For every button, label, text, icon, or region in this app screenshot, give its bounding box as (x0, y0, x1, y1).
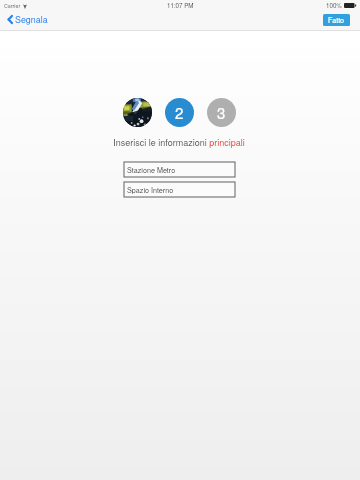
staticText: Carrier (4, 2, 21, 10)
button[interactable]: Stazione Metro (124, 162, 235, 177)
button[interactable]: Fatto (323, 14, 350, 26)
staticText: 3 (217, 102, 226, 123)
button[interactable]: Spazio Interno (124, 182, 235, 197)
button[interactable]: Indietro Segnala (0, 11, 54, 28)
staticText: 11:07 PM (167, 1, 194, 10)
staticText: Fatto (328, 15, 345, 25)
staticText: Inserisci le informazioni principali (113, 136, 245, 149)
button[interactable]: 2 (165, 98, 194, 127)
button[interactable]: Foto (123, 98, 152, 127)
staticText: Stazione Metro (127, 165, 176, 175)
staticText: Segnala (15, 13, 48, 26)
button[interactable]: 3 (207, 98, 236, 127)
staticText: 2 (175, 102, 184, 123)
staticText: 100% (326, 1, 342, 10)
staticText: Spazio Interno (127, 185, 174, 195)
